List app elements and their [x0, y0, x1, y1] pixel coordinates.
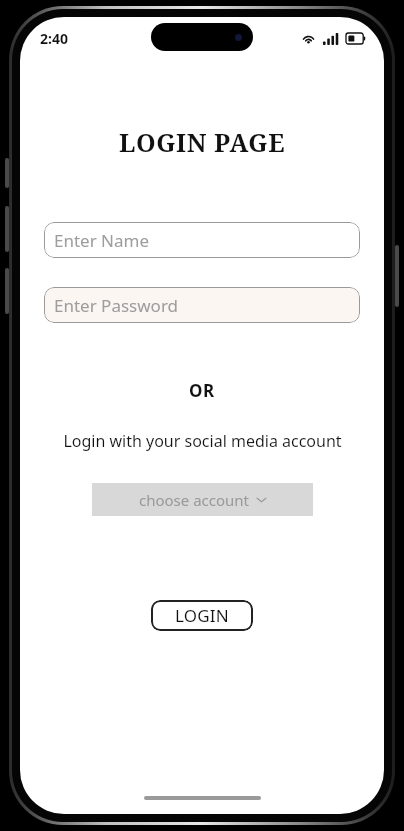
staticText: LOGIN PAGE [119, 125, 286, 159]
staticText: 2:40 [40, 29, 68, 48]
staticText: Enter Password [54, 294, 179, 317]
staticText: LOGIN [175, 604, 229, 627]
button[interactable]: LOGIN [151, 600, 253, 631]
button[interactable]: Enter Password [44, 287, 360, 323]
staticText: Login with your social media account [63, 430, 342, 452]
staticText: choose account [139, 490, 250, 510]
button[interactable]: choose account [92, 483, 313, 516]
staticText: Enter Name [54, 229, 150, 252]
staticText: OR [189, 379, 215, 402]
button[interactable]: Enter Name [44, 222, 360, 258]
